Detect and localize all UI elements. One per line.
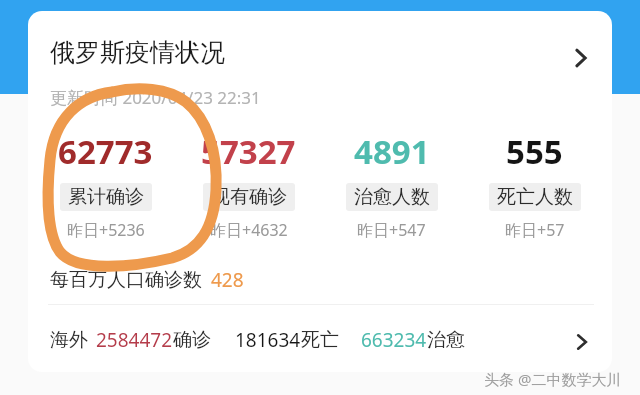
button[interactable]: 俄罗斯疫情状况 [28, 11, 612, 89]
button[interactable]: 62773 [34, 129, 177, 241]
staticText: 昨日+57 [505, 219, 565, 241]
button[interactable]: 每百万人口确诊数 [50, 267, 244, 293]
staticText: 57327 [201, 129, 296, 174]
staticText: 昨日+547 [357, 219, 426, 241]
other: 海外疫情详情 [570, 330, 594, 354]
button[interactable]: 4891 [320, 129, 463, 241]
button[interactable]: 555 [463, 129, 606, 241]
staticText: 2584472 [96, 327, 173, 353]
staticText: 更新时间 2020/04/23 22:31 [50, 86, 261, 109]
staticText: 头条 @二中数学大川 [484, 369, 622, 389]
button[interactable]: 57327 [177, 129, 320, 241]
staticText: 海外 [50, 328, 88, 352]
staticText: 181634 [235, 327, 301, 353]
staticText: 治愈 [427, 328, 465, 352]
staticText: 555 [506, 129, 563, 174]
staticText: 死亡 [301, 328, 339, 352]
staticText: 现有确诊 [211, 185, 287, 209]
staticText: 428 [211, 267, 244, 293]
staticText: 累计确诊 [68, 185, 144, 209]
staticText: 4891 [354, 129, 430, 174]
staticText: 每百万人口确诊数 [50, 268, 202, 292]
staticText: 死亡人数 [497, 185, 573, 209]
staticText: 确诊 [173, 328, 211, 352]
button[interactable]: 海外 [28, 317, 612, 367]
staticText: 治愈人数 [354, 185, 430, 209]
staticText: 昨日+5236 [67, 219, 145, 241]
staticText: 663234 [361, 327, 427, 353]
staticText: 俄罗斯疫情状况 [50, 37, 225, 68]
staticText: 昨日+4632 [210, 219, 288, 241]
other: 查看详情 [568, 45, 594, 71]
staticText: 62773 [58, 129, 153, 174]
